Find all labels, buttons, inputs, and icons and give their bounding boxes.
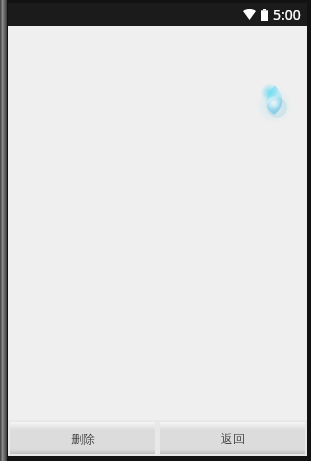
other: Water drop (262, 84, 286, 116)
staticText: 删除 (71, 431, 95, 446)
staticText: 5:00 (273, 5, 301, 24)
button[interactable]: 返回 (160, 422, 305, 454)
button[interactable]: 删除 (10, 422, 155, 454)
staticText: 返回 (221, 431, 245, 446)
